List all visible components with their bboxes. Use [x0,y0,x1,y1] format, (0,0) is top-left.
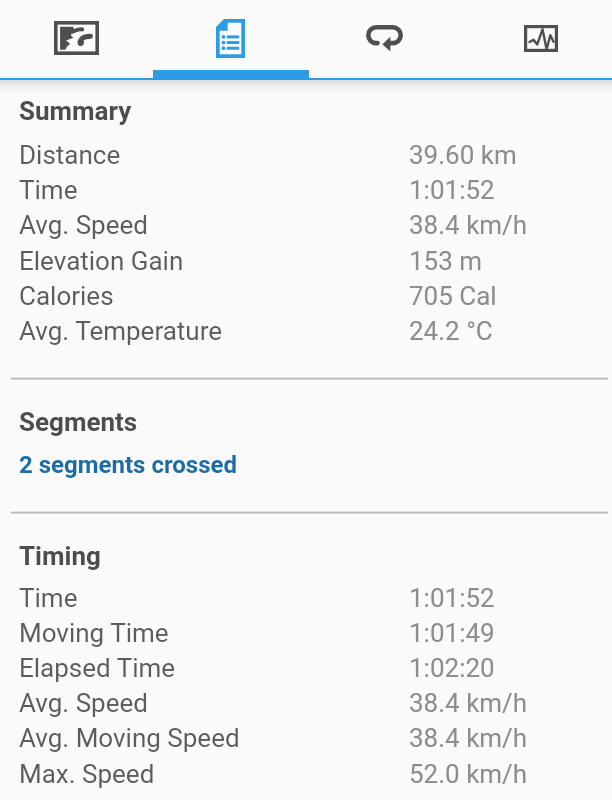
staticText: Summary [19,96,132,126]
staticText: Avg. Temperature [19,316,223,346]
staticText: 1:01:49 [409,618,495,648]
staticText: 52.0 km/h [409,759,528,789]
staticText: 1:02:20 [409,653,495,683]
staticText: Elevation Gain [19,246,184,276]
staticText: Distance [19,140,121,170]
staticText: Segments [19,407,138,437]
staticText: Time [19,583,78,613]
staticText: 1:01:52 [409,583,495,613]
staticText: 153 m [409,246,483,276]
staticText: 24.2 °C [409,316,493,346]
button[interactable]: Details [153,0,306,70]
staticText: Avg. Moving Speed [19,723,240,753]
button[interactable]: 2 segments crossed [0,451,612,485]
staticText: 39.60 km [409,140,517,170]
staticText: Max. Speed [19,759,155,789]
button[interactable]: Chart [459,0,612,70]
staticText: 38.4 km/h [409,688,528,718]
button[interactable]: Laps [306,0,459,70]
staticText: 1:01:52 [409,175,495,205]
staticText: Calories [19,281,114,311]
staticText: Moving Time [19,618,169,648]
staticText: 38.4 km/h [409,723,528,753]
staticText: Time [19,175,78,205]
staticText: Timing [19,541,101,571]
staticText: 2 segments crossed [19,451,238,479]
staticText: Elapsed Time [19,653,176,683]
staticText: Avg. Speed [19,210,148,240]
staticText: 705 Cal [409,281,497,311]
staticText: Avg. Speed [19,688,148,718]
staticText: 38.4 km/h [409,210,528,240]
button[interactable]: Map [0,0,153,70]
